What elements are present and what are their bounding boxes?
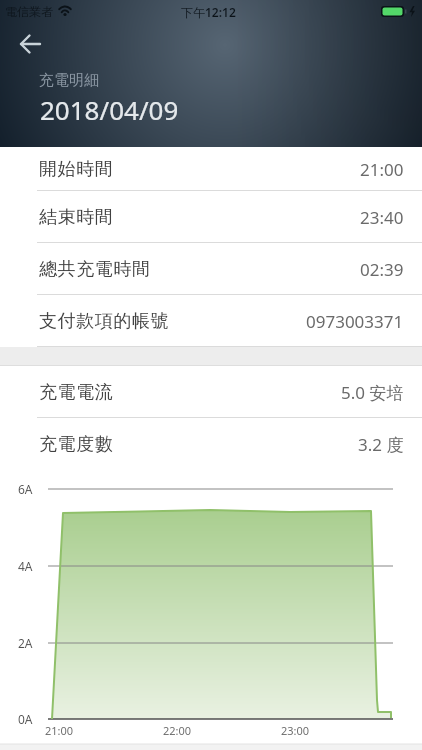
staticText: 0973003371 — [306, 310, 404, 333]
staticText: 02:39 — [360, 258, 404, 281]
staticText: 支付款項的帳號 — [39, 310, 170, 333]
button[interactable] — [10, 26, 50, 62]
staticText: 3.2 度 — [358, 433, 404, 456]
staticText: 2018/04/09 — [40, 92, 179, 127]
staticText: 總共充電時間 — [39, 258, 151, 281]
staticText: 4A — [18, 558, 33, 574]
button[interactable]: 充電電流 — [0, 366, 422, 418]
button[interactable]: 支付款項的帳號 — [0, 295, 422, 347]
staticText: 2A — [18, 635, 33, 651]
staticText: 6A — [18, 481, 33, 497]
staticText: 21:00 — [45, 723, 74, 738]
staticText: 充電明細 — [39, 71, 99, 90]
staticText: 下午12:12 — [181, 4, 236, 20]
button[interactable]: 結束時間 — [0, 191, 422, 243]
staticText: 電信業者 — [5, 4, 53, 19]
staticText: 5.0 安培 — [341, 381, 404, 404]
staticText: 22:00 — [163, 723, 192, 738]
staticText: 結束時間 — [39, 206, 114, 229]
button[interactable]: 總共充電時間 — [0, 243, 422, 295]
button[interactable]: 充電度數 — [0, 418, 422, 470]
staticText: 充電電流 — [39, 381, 114, 404]
button[interactable]: 開始時間 — [0, 147, 422, 191]
staticText: 0A — [18, 711, 33, 727]
staticText: 開始時間 — [39, 158, 114, 181]
staticText: 21:00 — [360, 158, 404, 181]
staticText: 充電度數 — [39, 433, 114, 456]
staticText: 23:40 — [360, 206, 404, 229]
staticText: 23:00 — [281, 723, 310, 738]
